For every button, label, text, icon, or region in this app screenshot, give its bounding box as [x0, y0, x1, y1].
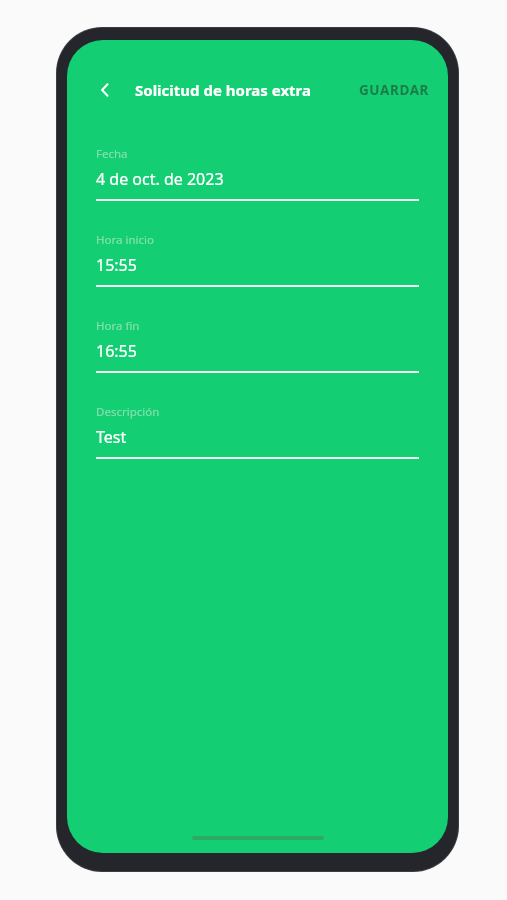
staticText: Test — [96, 426, 127, 448]
button[interactable]: Back — [87, 72, 123, 108]
staticText: 4 de oct. de 2023 — [96, 168, 224, 190]
button[interactable]: Hora inicio — [67, 232, 448, 287]
staticText: Hora fin — [96, 318, 140, 334]
button[interactable]: Fecha — [67, 146, 448, 201]
staticText: Fecha — [96, 146, 128, 162]
staticText: Descripción — [96, 404, 160, 420]
staticText: Solicitud de horas extra — [135, 80, 311, 100]
button[interactable]: GUARDAR — [349, 75, 440, 105]
staticText: 16:55 — [96, 340, 137, 362]
button[interactable]: Descripción — [67, 404, 448, 459]
staticText: 15:55 — [96, 254, 137, 276]
button[interactable]: Hora fin — [67, 318, 448, 373]
staticText: Hora inicio — [96, 232, 154, 248]
staticText: GUARDAR — [359, 81, 430, 99]
